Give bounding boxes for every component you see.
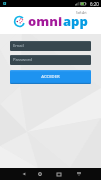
- staticText: Password: [13, 57, 32, 63]
- button[interactable]: Email: [10, 41, 91, 51]
- staticText: Soft Art: [76, 11, 87, 15]
- staticText: omni: [28, 12, 63, 30]
- button[interactable]: Back: [17, 168, 30, 180]
- button[interactable]: ACCEDER: [10, 70, 91, 84]
- button[interactable]: Hide keyboard: [72, 168, 85, 180]
- button[interactable]: Home: [33, 168, 46, 180]
- staticText: Email: [13, 43, 24, 49]
- staticText: app: [63, 12, 88, 30]
- staticText: 6:20: [90, 1, 99, 7]
- button[interactable]: Password: [10, 55, 91, 65]
- button[interactable]: Recent apps: [52, 168, 65, 180]
- staticText: ACCEDER: [10, 74, 91, 80]
